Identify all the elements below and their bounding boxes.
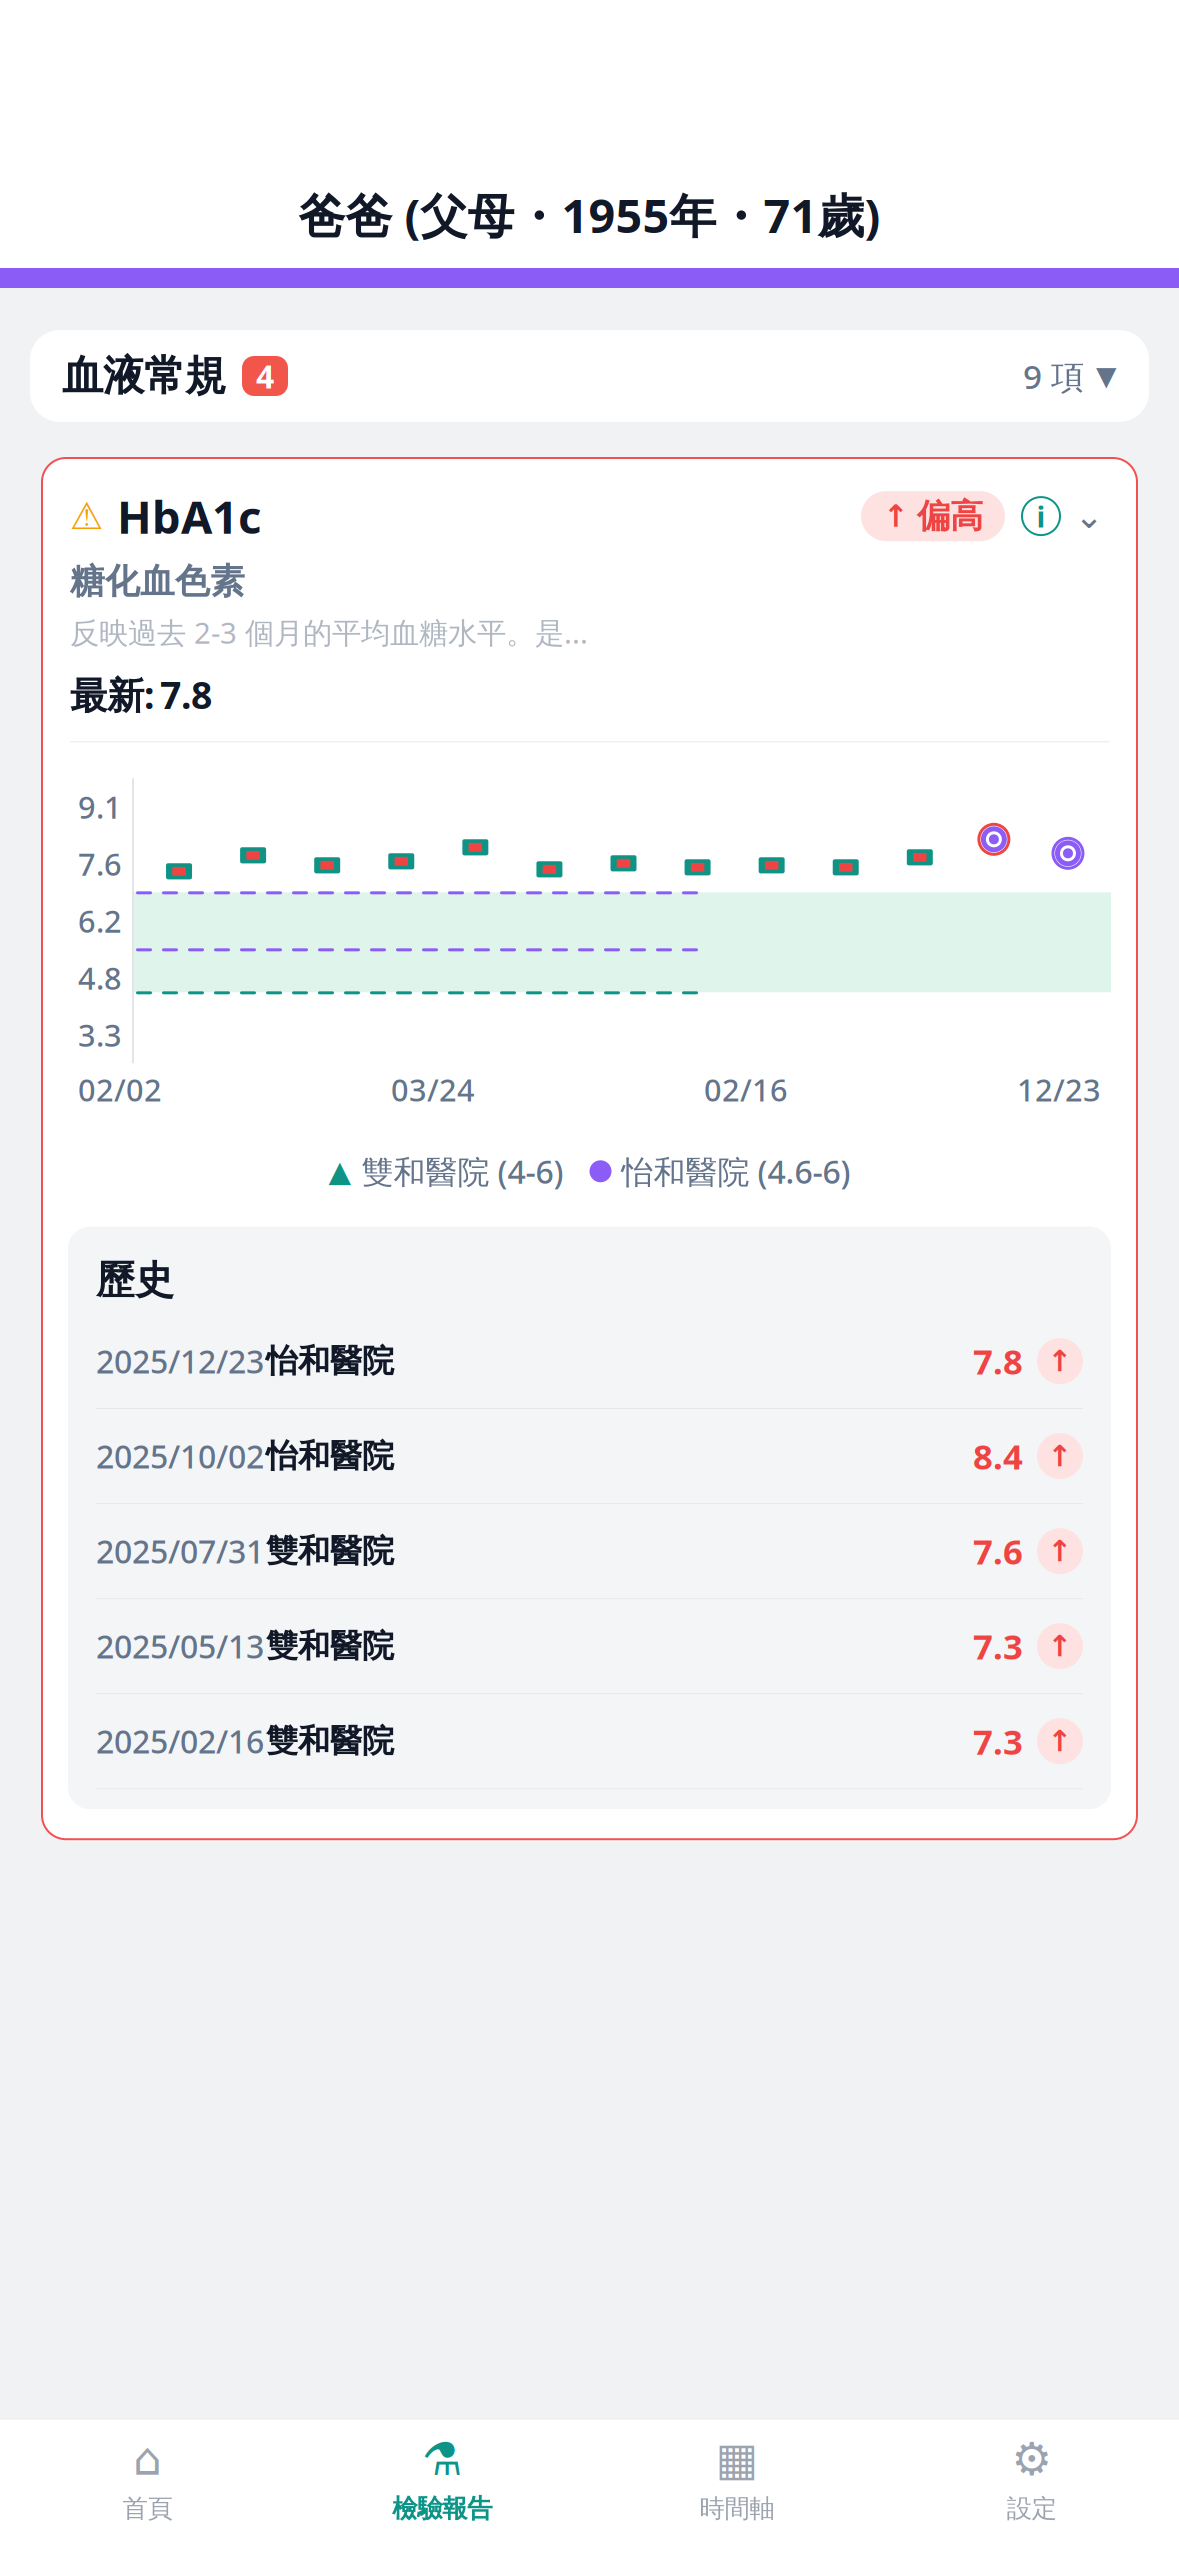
staticText: 7.3: [973, 1623, 1023, 1669]
staticText: 03/24: [391, 1069, 475, 1110]
staticText: 9 項: [1023, 354, 1084, 398]
button[interactable]: ▦: [589, 2419, 884, 2534]
button[interactable]: 2025/12/23: [68, 1314, 1111, 1408]
staticText: 8.4: [973, 1433, 1023, 1479]
staticText: 02/16: [704, 1069, 788, 1110]
staticText: ▦: [715, 2433, 758, 2485]
staticText: 7.3: [973, 1718, 1023, 1764]
staticText: 怡和醫院: [266, 1436, 394, 1476]
staticText: ↑: [1047, 1344, 1072, 1378]
staticText: 雙和醫院: [266, 1531, 394, 1571]
staticText: HbA1c: [117, 486, 261, 546]
staticText: 2025/10/02: [96, 1435, 264, 1477]
button[interactable]: 2025/07/31: [68, 1503, 1111, 1598]
button[interactable]: 展開: [1069, 494, 1109, 538]
staticText: ↑: [1047, 1724, 1072, 1758]
staticText: 最新:: [70, 670, 154, 719]
staticText: 7.6: [973, 1528, 1023, 1574]
staticText: 血液常規: [62, 351, 226, 401]
staticText: 歷史: [96, 1256, 174, 1304]
staticText: 7.8: [160, 670, 212, 719]
button[interactable]: ⌂: [0, 2419, 295, 2534]
staticText: 爸爸 (父母・1955年・71歲): [298, 184, 880, 246]
staticText: 6.2: [78, 900, 122, 941]
button[interactable]: ⚗: [295, 2419, 590, 2534]
staticText: 2025/07/31: [96, 1530, 264, 1572]
staticText: 2025/02/16: [96, 1720, 264, 1762]
staticText: 時間軸: [699, 2493, 774, 2524]
staticText: ⚠: [70, 495, 103, 537]
staticText: 設定: [1007, 2493, 1057, 2524]
staticText: 2025/12/23: [96, 1340, 264, 1382]
staticText: 雙和醫院: [266, 1721, 394, 1761]
staticText: 首頁: [122, 2493, 172, 2524]
button[interactable]: 2025/10/02: [68, 1408, 1111, 1503]
staticText: 02/02: [78, 1069, 162, 1110]
staticText: ↑: [1047, 1534, 1072, 1568]
staticText: 7.6: [78, 843, 122, 884]
staticText: ↑: [883, 499, 909, 533]
staticText: 反映過去 2-3 個月的平均血糖水平。是...: [70, 613, 588, 652]
staticText: 雙和醫院 (4-6): [361, 1150, 563, 1192]
button[interactable]: 說明: [1019, 494, 1063, 538]
staticText: 9.1: [78, 786, 122, 827]
staticText: ⚗: [422, 2433, 463, 2485]
staticText: 4.8: [78, 957, 122, 998]
staticText: 7.8: [973, 1338, 1023, 1384]
staticText: ⌂: [133, 2433, 162, 2485]
staticText: 雙和醫院: [266, 1626, 394, 1666]
staticText: 4: [256, 355, 274, 397]
staticText: ▼: [1096, 361, 1117, 391]
staticText: ↑: [1047, 1439, 1072, 1473]
staticText: 檢驗報告: [392, 2493, 492, 2524]
button[interactable]: 血液常規: [30, 330, 1149, 422]
button[interactable]: 2025/05/13: [68, 1598, 1111, 1693]
staticText: 怡和醫院: [266, 1341, 394, 1381]
staticText: 偏高: [917, 496, 983, 536]
staticText: 3.3: [78, 1014, 122, 1055]
staticText: 怡和醫院 (4.6-6): [621, 1150, 850, 1192]
staticText: 2025/05/13: [96, 1625, 264, 1667]
staticText: ▲: [328, 1155, 351, 1188]
staticText: ↑: [1047, 1629, 1072, 1663]
button[interactable]: ⚙: [884, 2419, 1179, 2534]
staticText: ⌄: [1074, 496, 1103, 536]
staticText: ⚙: [1011, 2433, 1052, 2485]
staticText: 糖化血色素: [70, 560, 245, 603]
button[interactable]: ↑: [861, 491, 1005, 541]
button[interactable]: 2025/02/16: [68, 1693, 1111, 1788]
staticText: i: [1036, 497, 1045, 536]
staticText: 12/23: [1017, 1069, 1101, 1110]
